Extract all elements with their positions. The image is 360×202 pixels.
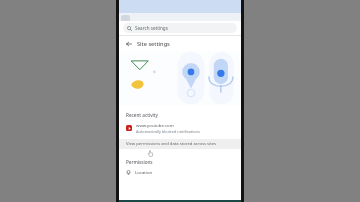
- staticText: Search settings: [135, 25, 168, 31]
- staticText: Permissions: [126, 159, 153, 165]
- staticText: Location: [135, 169, 153, 175]
- staticText: Recent activity: [126, 112, 158, 118]
- staticText: Site settings: [137, 40, 170, 48]
- button[interactable]: Location: [119, 169, 241, 175]
- button[interactable]: Search settings: [123, 23, 237, 33]
- staticText: View permissions and data stored across …: [126, 141, 217, 147]
- button[interactable]: Tab: [121, 15, 130, 21]
- staticText: www.youtube.com: [136, 122, 174, 128]
- button[interactable]: Back: [123, 38, 134, 49]
- button[interactable]: View permissions and data stored across …: [119, 139, 241, 149]
- button[interactable]: www.youtube.com: [119, 121, 241, 135]
- staticText: Automatically blocked notifications: [136, 129, 200, 134]
